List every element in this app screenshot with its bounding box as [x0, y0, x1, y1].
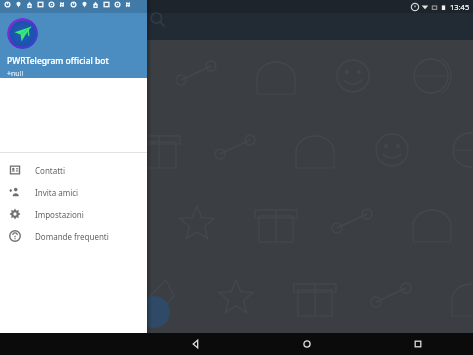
button[interactable]: Invita amici	[0, 181, 147, 203]
staticText: Contatti	[35, 165, 66, 176]
staticText: +null	[7, 69, 24, 79]
staticText: PWRTelegram official bot	[7, 55, 109, 67]
staticText: Impostazioni	[35, 209, 84, 220]
button[interactable]: Search	[148, 10, 168, 30]
button[interactable]: Home	[251, 333, 362, 355]
button[interactable]: Back	[140, 333, 251, 355]
button[interactable]: Impostazioni	[0, 203, 147, 225]
staticText: Domande frequenti	[35, 231, 109, 242]
button[interactable]: Domande frequenti	[0, 225, 147, 247]
button[interactable]: New message	[138, 296, 170, 328]
staticText: Invita amici	[35, 187, 79, 198]
button[interactable]	[7, 18, 38, 49]
staticText: 13:45	[450, 2, 470, 12]
button[interactable]: Recents	[362, 333, 473, 355]
button[interactable]: Contatti	[0, 159, 147, 181]
